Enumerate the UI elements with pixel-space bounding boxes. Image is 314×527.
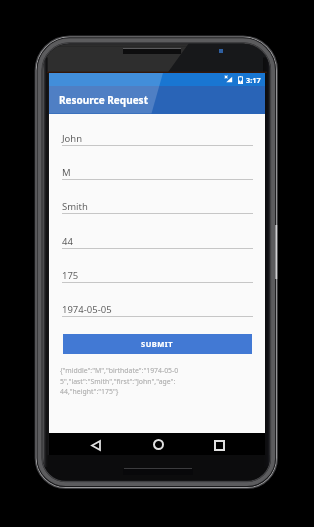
button[interactable]: M (62, 163, 253, 180)
button[interactable]: 1974-05-05 (62, 300, 253, 317)
button[interactable]: Home (148, 434, 168, 454)
button[interactable]: 175 (62, 266, 253, 283)
staticText: SUBMIT (141, 339, 174, 349)
staticText: 175 (62, 269, 79, 282)
staticText: M (62, 166, 71, 179)
staticText: {"middle":"M","birthdate":"1974-05-0 5",… (60, 366, 190, 396)
staticText: Smith (62, 200, 88, 213)
staticText: 1974-05-05 (62, 303, 112, 316)
button[interactable]: Smith (62, 197, 253, 214)
staticText: Resource Request (59, 93, 148, 107)
staticText: 44 (62, 235, 73, 248)
button[interactable]: SUBMIT (63, 334, 252, 354)
button[interactable]: Resource Request (49, 86, 265, 114)
button[interactable]: Back (86, 435, 106, 455)
button[interactable]: 44 (62, 232, 253, 249)
staticText: 3:17 (246, 75, 261, 85)
staticText: John (62, 132, 83, 145)
button[interactable]: Recent apps (209, 435, 229, 455)
button[interactable]: John (62, 129, 253, 146)
